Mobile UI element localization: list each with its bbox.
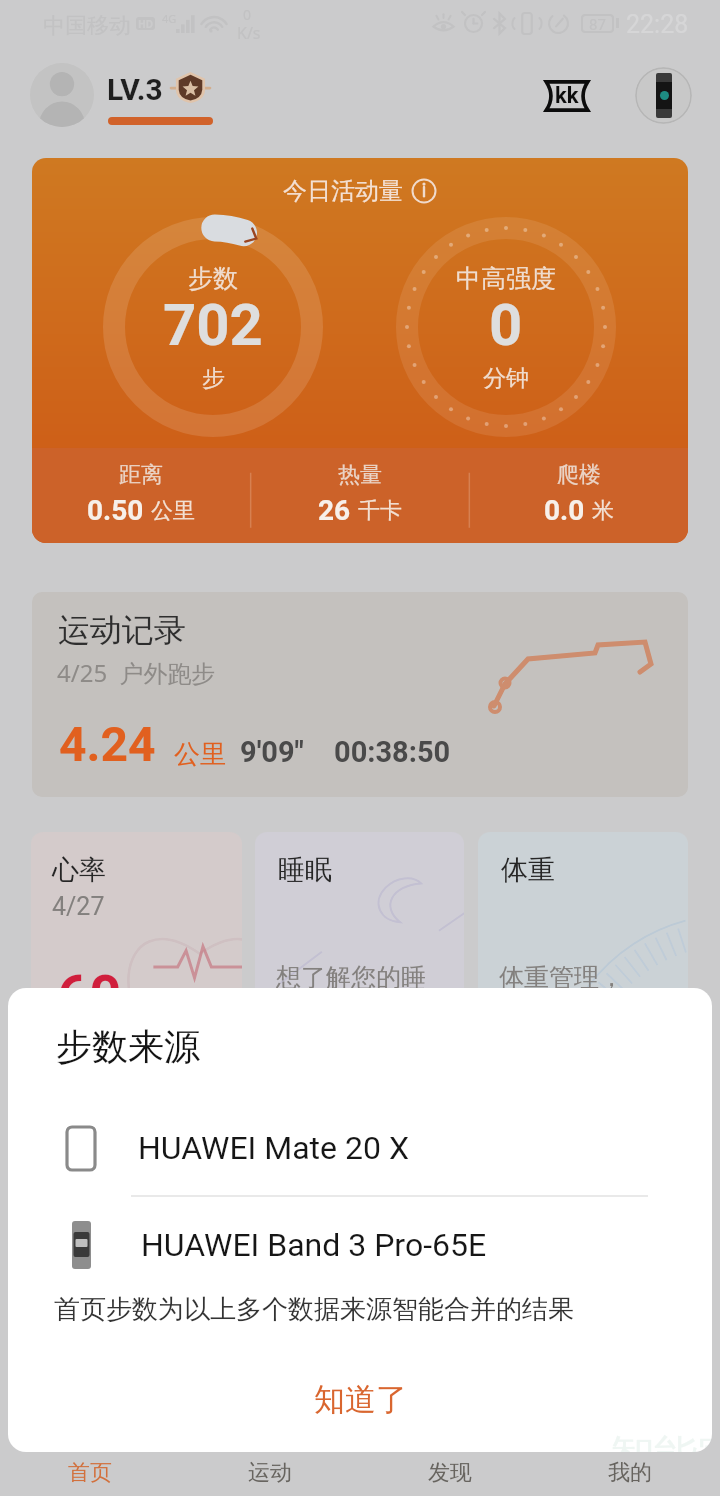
- button[interactable]: 距离: [32, 448, 250, 543]
- staticText: 中国移动: [43, 12, 131, 40]
- button[interactable]: 热量: [250, 448, 469, 543]
- staticText: 公里: [151, 497, 195, 525]
- staticText: 体重: [501, 853, 555, 887]
- staticText: 702: [163, 291, 263, 359]
- button[interactable]: 知道了: [8, 1362, 712, 1436]
- staticText: 0: [489, 291, 523, 359]
- staticText: 22:28: [626, 10, 689, 39]
- staticText: 知道了: [314, 1380, 407, 1419]
- staticText: 0.50: [87, 494, 144, 527]
- staticText: 26: [318, 494, 351, 527]
- staticText: HD: [138, 17, 153, 30]
- button[interactable]: 我的: [540, 1452, 720, 1496]
- staticText: 步数: [188, 263, 238, 294]
- staticText: 千卡: [358, 497, 402, 525]
- staticText: 60: [57, 963, 122, 1029]
- staticText: 发现: [428, 1459, 472, 1487]
- button[interactable]: Coupon: [541, 74, 593, 118]
- button[interactable]: My device: [635, 67, 692, 124]
- button[interactable]: 心率: [31, 832, 242, 1042]
- staticText: 0: [243, 5, 252, 24]
- staticText: 4/25 户外跑步: [57, 656, 216, 689]
- staticText: 步数来源: [56, 1024, 200, 1069]
- staticText: 9'09": [240, 735, 304, 769]
- button[interactable]: 首页: [0, 1452, 180, 1496]
- staticText: K/s: [237, 22, 261, 44]
- staticText: 智能家: [610, 1429, 712, 1452]
- staticText: 00:38:50: [334, 735, 451, 769]
- staticText: kk: [555, 83, 579, 109]
- staticText: 首页: [68, 1459, 112, 1487]
- staticText: 运动记录: [58, 610, 186, 650]
- staticText: 体重管理，: [499, 962, 624, 993]
- button[interactable]: 体重: [478, 832, 688, 1042]
- button[interactable]: 睡眠: [255, 832, 464, 1042]
- staticText: 运动: [248, 1459, 292, 1487]
- staticText: 热量: [338, 461, 382, 489]
- staticText: 0.0: [544, 494, 585, 527]
- button[interactable]: 运动记录: [32, 592, 688, 797]
- staticText: 中高强度: [456, 263, 556, 294]
- button[interactable]: 今日活动量: [32, 158, 688, 543]
- staticText: LV.3: [107, 72, 163, 107]
- button[interactable]: 运动: [180, 1452, 360, 1496]
- staticText: 想了解您的睡: [276, 962, 426, 993]
- staticText: 4/27: [52, 892, 105, 921]
- staticText: 距离: [119, 461, 163, 489]
- staticText: 睡眠: [278, 853, 332, 887]
- button[interactable]: HUAWEI Band 3 Pro-65E: [8, 1198, 712, 1292]
- staticText: 心率: [52, 853, 106, 887]
- staticText: 分钟: [483, 364, 529, 393]
- staticText: 87: [589, 16, 606, 31]
- button[interactable]: HUAWEI Mate 20 X: [8, 1101, 712, 1195]
- staticText: 公里: [174, 738, 226, 771]
- staticText: 首页步数为以上多个数据来源智能合并的结果: [54, 1293, 574, 1326]
- staticText: 米: [592, 497, 614, 525]
- button[interactable]: 发现: [360, 1452, 540, 1496]
- staticText: 4.24: [59, 716, 156, 772]
- staticText: 我的: [608, 1459, 652, 1487]
- staticText: 步: [202, 364, 225, 393]
- staticText: 爬楼: [557, 461, 601, 489]
- staticText: 今日活动量: [283, 176, 403, 206]
- button[interactable]: 爬楼: [469, 448, 688, 543]
- staticText: 4G: [162, 11, 177, 26]
- button[interactable]: Profile avatar: [30, 63, 94, 127]
- staticText: HUAWEI Mate 20 X: [138, 1129, 409, 1167]
- staticText: HUAWEI Band 3 Pro-65E: [141, 1226, 487, 1264]
